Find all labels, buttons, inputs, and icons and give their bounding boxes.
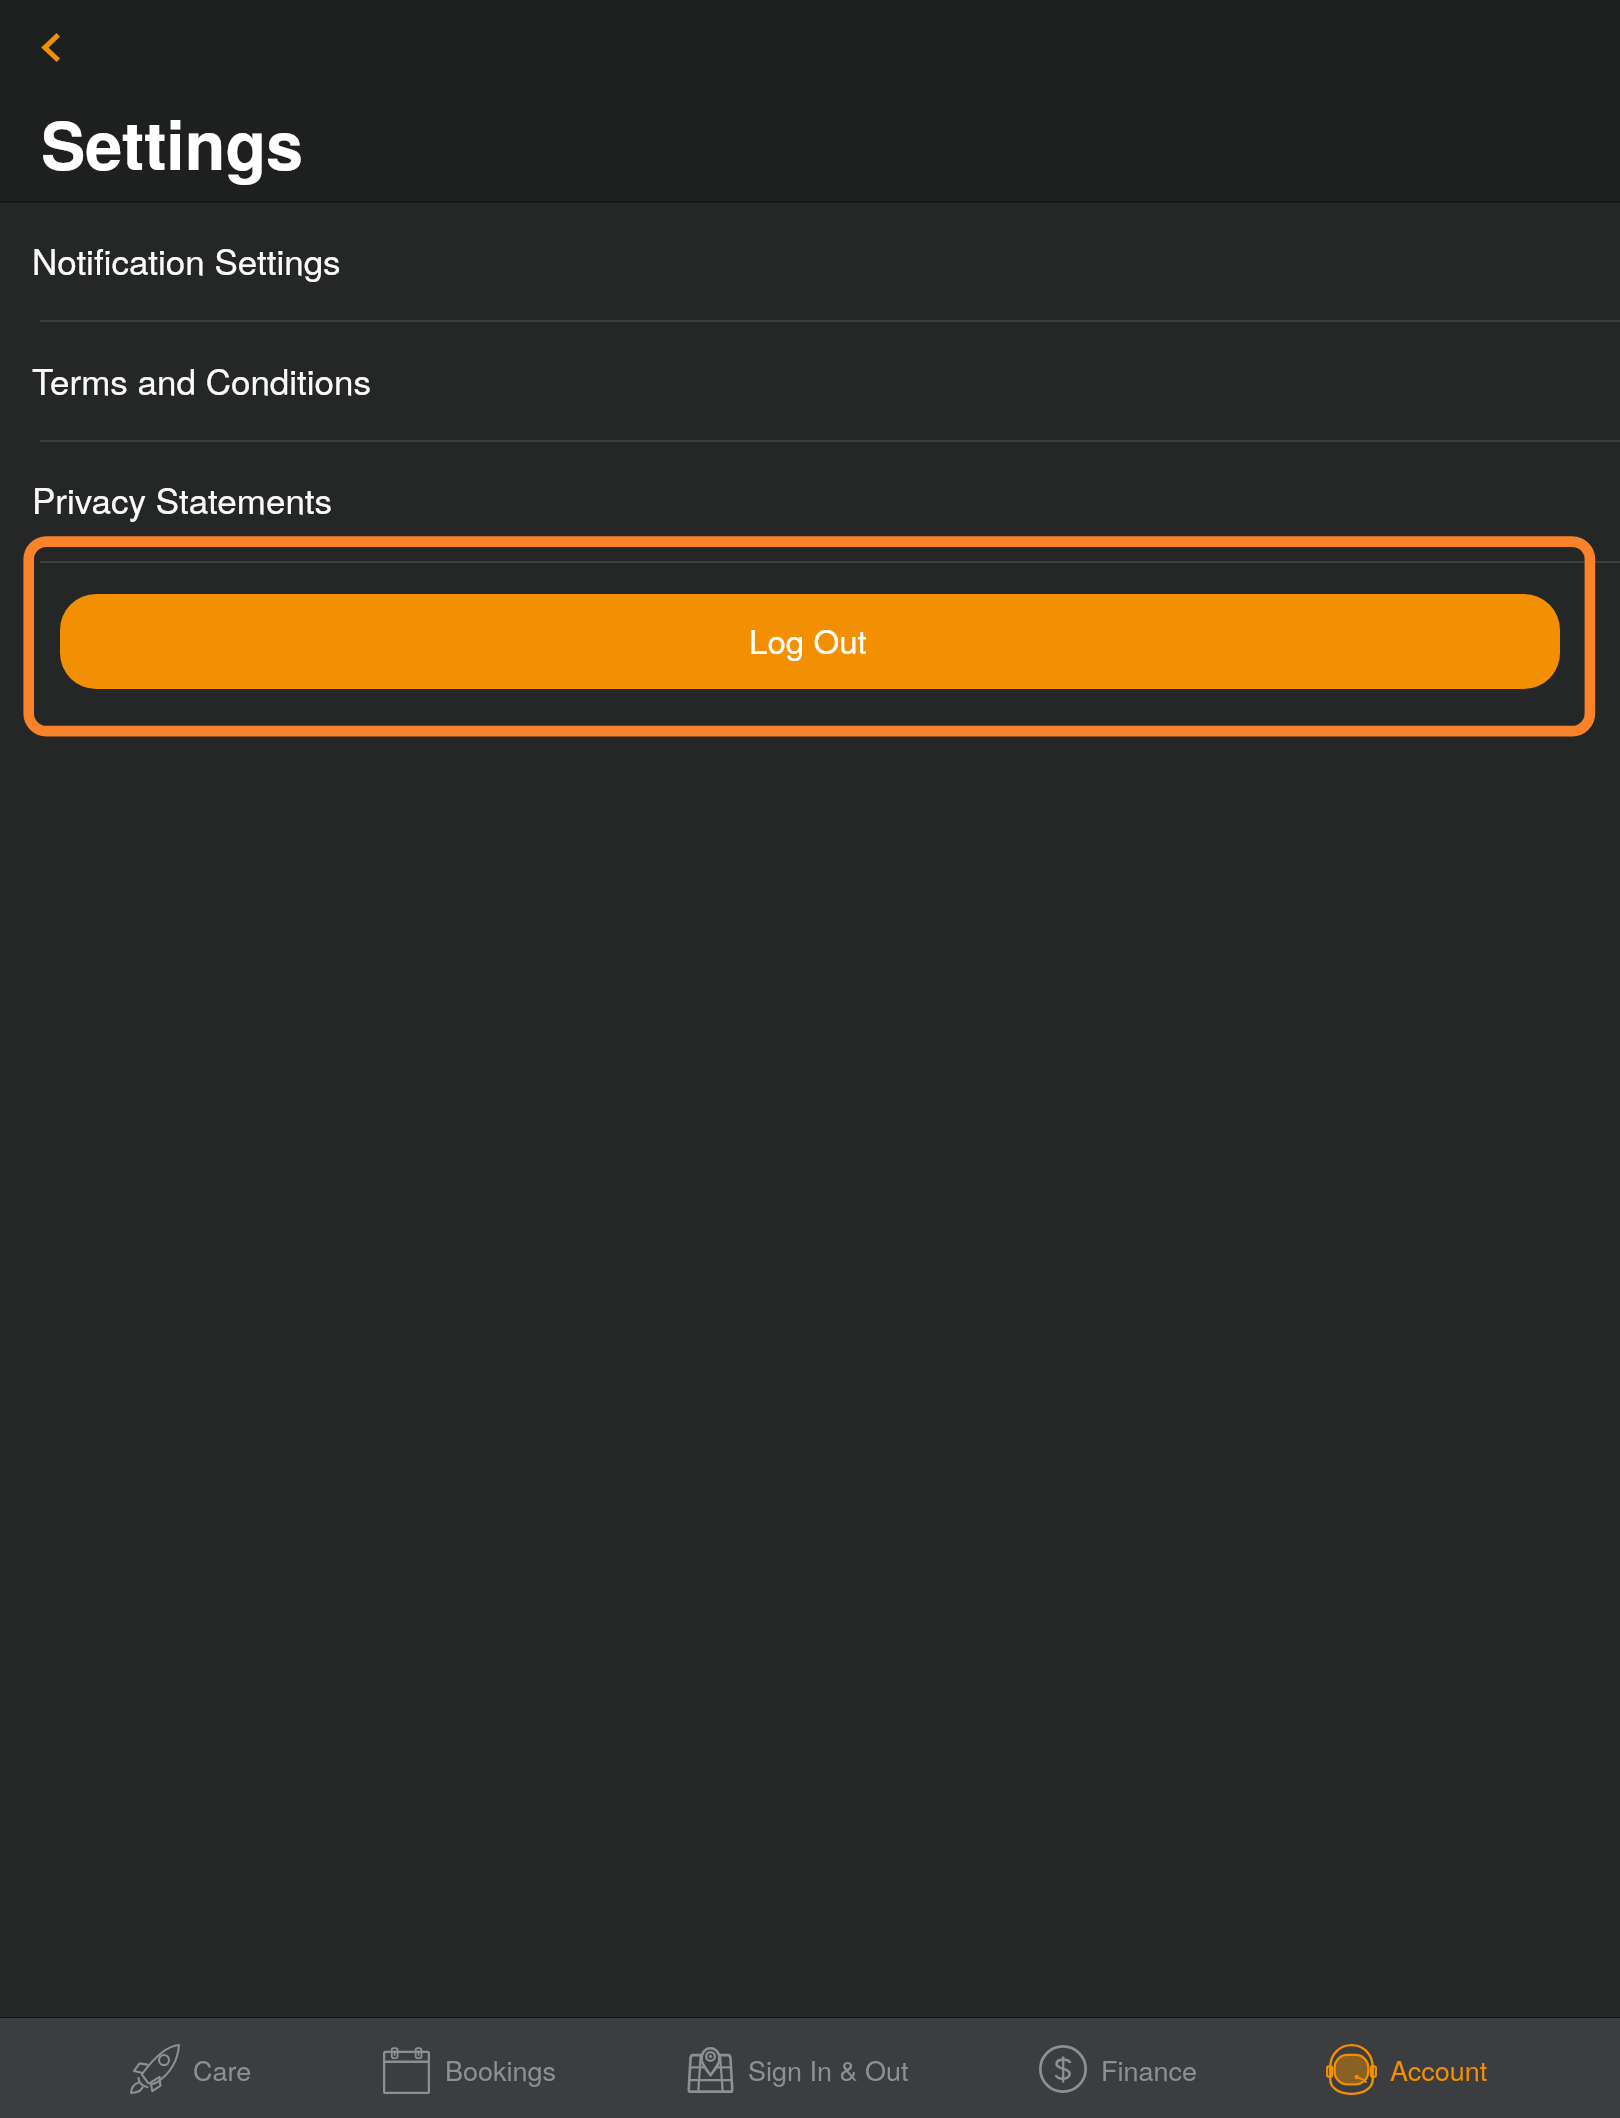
staticText: Log Out [749,616,867,663]
staticText: Finance [1101,2050,1198,2089]
staticText: Account [1390,2050,1488,2089]
button[interactable]: Bookings [324,2018,648,2118]
button[interactable]: Privacy Statements [0,440,1620,561]
staticText: Bookings [445,2050,557,2089]
button[interactable]: Terms and Conditions [0,321,1620,440]
staticText: Care [193,2050,252,2089]
staticText: Settings [41,95,304,190]
button[interactable]: Notification Settings [0,200,1620,321]
button[interactable]: Care [0,2018,324,2118]
button[interactable]: Back [8,14,76,82]
button[interactable]: Log Out [60,594,1560,689]
staticText: Terms and Conditions [32,355,372,405]
button[interactable]: Sign In & Out [648,2018,972,2118]
staticText: Notification Settings [32,235,341,285]
button[interactable]: Account [1296,2018,1620,2118]
button[interactable]: Finance [972,2018,1296,2118]
staticText: Privacy Statements [32,474,333,524]
staticText: Sign In & Out [748,2050,909,2089]
